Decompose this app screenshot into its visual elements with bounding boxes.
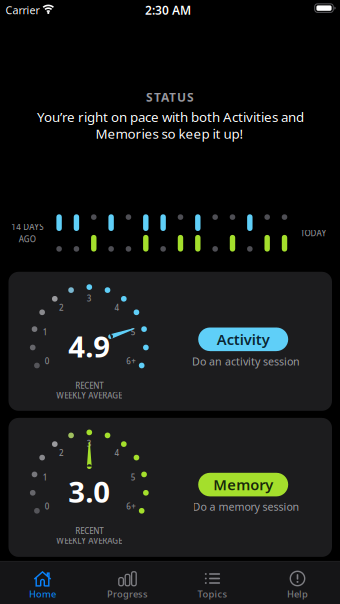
staticText: RECENT <box>75 380 103 391</box>
staticText: You’re right on pace with both Activitie… <box>37 108 304 126</box>
button[interactable]: Progress <box>85 561 170 604</box>
staticText: 3 <box>87 438 92 449</box>
button[interactable]: Memory <box>198 473 288 496</box>
staticText: 2 <box>59 448 64 458</box>
staticText: Progress <box>107 588 148 600</box>
staticText: Topics <box>197 588 227 600</box>
staticText: Memory <box>213 475 273 494</box>
button[interactable]: Activity <box>198 327 288 351</box>
staticText: 2:30 AM <box>145 2 191 18</box>
staticText: 0 <box>45 356 50 366</box>
staticText: 3.0 <box>68 472 110 511</box>
staticText: 4.9 <box>68 327 110 366</box>
staticText: RECENT <box>75 526 103 536</box>
staticText: 6+ <box>126 501 136 512</box>
staticText: Do a memory session <box>192 500 299 514</box>
staticText: TODAY <box>300 228 326 238</box>
staticText: Help <box>287 588 308 600</box>
staticText: STATUS <box>146 89 194 105</box>
button[interactable]: Topics <box>170 561 255 604</box>
staticText: 0 <box>45 501 50 512</box>
staticText: Activity <box>217 330 270 349</box>
staticText: WEEKLY AVERAGE <box>56 535 122 546</box>
staticText: Carrier <box>5 3 39 17</box>
staticText: 6+ <box>126 356 136 366</box>
staticText: Home <box>29 588 56 600</box>
staticText: 5 <box>131 327 136 337</box>
staticText: 2 <box>59 302 64 313</box>
staticText: 1 <box>43 472 48 483</box>
button[interactable]: Home <box>0 561 85 604</box>
staticText: 5 <box>131 472 136 483</box>
staticText: 14 DAYS AGO <box>11 222 43 244</box>
staticText: 4 <box>114 448 119 458</box>
staticText: Memories so keep it up! <box>95 125 243 142</box>
staticText: 3 <box>87 293 92 304</box>
staticText: 1 <box>43 327 48 337</box>
staticText: WEEKLY AVERAGE <box>56 390 122 401</box>
staticText: Do an activity session <box>192 354 300 368</box>
staticText: 4 <box>114 302 119 313</box>
button[interactable]: Help <box>255 561 340 604</box>
